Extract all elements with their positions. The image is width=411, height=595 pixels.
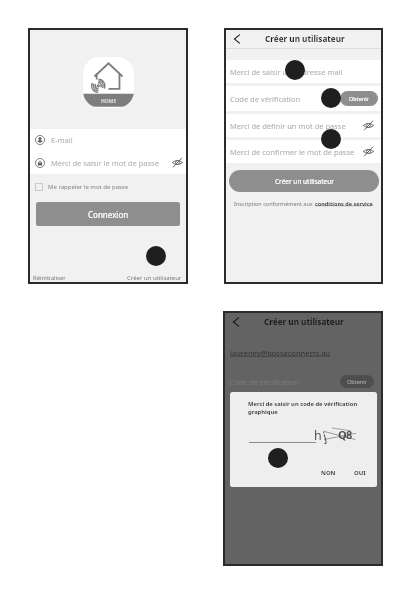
staticText: Obtenir (347, 378, 367, 385)
staticText: Q (338, 427, 347, 442)
button[interactable]: Merci de saisir une adresse mail (224, 60, 383, 83)
button[interactable]: E-mail (28, 129, 188, 151)
button[interactable]: Merci de définir un mot de passe (224, 114, 383, 137)
button[interactable]: Créer un utilisateur (127, 274, 182, 282)
staticText: Inscription conformément aux (234, 200, 315, 207)
staticText: HOME (101, 98, 117, 105)
staticText: Créer un utilisateur (275, 177, 334, 186)
button[interactable]: Créer un utilisateur (229, 170, 379, 192)
staticText: h (314, 427, 322, 444)
button[interactable]: Obtenir (340, 91, 378, 106)
button[interactable]: NON (321, 469, 336, 477)
button[interactable]: Réinitialiser (33, 274, 66, 282)
staticText: Merci de saisir un code de vérification … (248, 400, 358, 416)
button[interactable]: Merci de saisir le mot de passe (28, 151, 188, 174)
button[interactable]: conditions de service (315, 200, 373, 207)
staticText: Connexion (88, 209, 129, 220)
staticText: Merci de confirmer le mot de passe (230, 147, 355, 157)
staticText: Créer un utilisateur (265, 33, 345, 44)
staticText: Obtenir (349, 95, 369, 102)
staticText: Code de vérification (230, 94, 301, 104)
button[interactable]: Afficher le mot de passe (172, 158, 183, 167)
staticText: Merci de saisir le mot de passe (51, 158, 159, 168)
button[interactable]: Me rappeler le mot de passe (35, 181, 129, 193)
button[interactable]: Afficher le mot de passe (363, 147, 374, 156)
staticText: Merci de saisir une adresse mail (230, 67, 343, 77)
staticText: 8 (346, 427, 353, 442)
staticText: j (321, 428, 329, 445)
staticText: Code de vérification (229, 377, 300, 387)
staticText: Me rappeler le mot de passe (48, 183, 129, 191)
button[interactable]: Retour (231, 33, 243, 45)
staticText: Créer un utilisateur (264, 316, 344, 327)
button[interactable]: Connexion (36, 202, 180, 226)
staticText: E-mail (51, 135, 73, 145)
button[interactable]: OUI (354, 469, 366, 477)
button[interactable]: Merci de confirmer le mot de passe (224, 140, 383, 163)
button[interactable]: laurenev@bossaconnects.au (230, 348, 331, 358)
button[interactable]: Obtenir (340, 375, 374, 388)
button[interactable]: Retour (230, 316, 242, 328)
staticText: Merci de définir un mot de passe (230, 121, 346, 131)
button[interactable]: Afficher le mot de passe (363, 121, 374, 130)
